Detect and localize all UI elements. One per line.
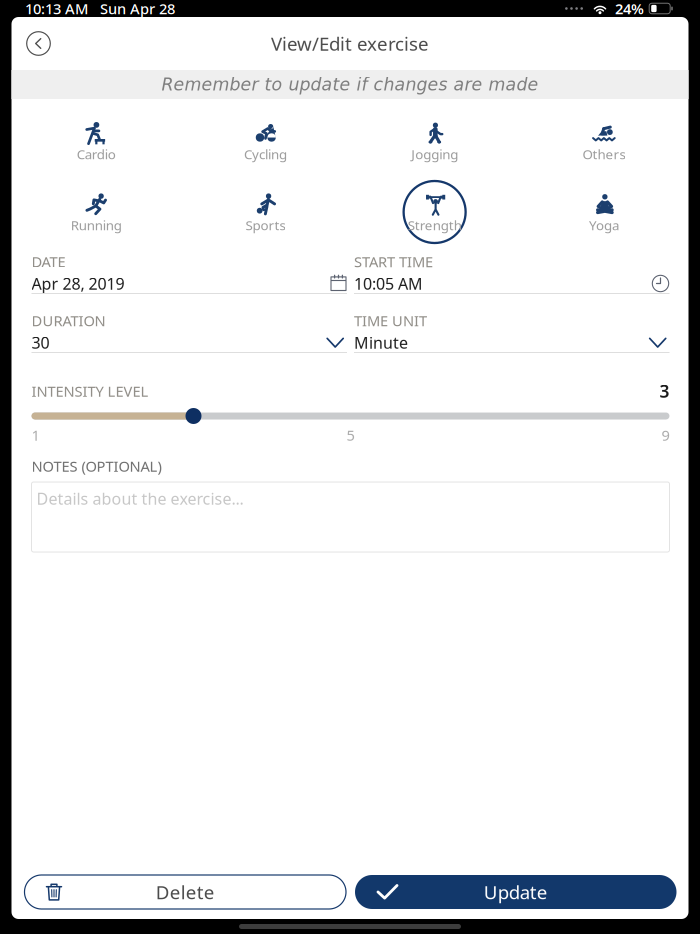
staticText: Strength xyxy=(408,216,462,234)
button[interactable]: START TIME xyxy=(354,254,669,294)
staticText: Yoga xyxy=(589,216,619,234)
staticText: Details about the exercise... xyxy=(36,488,243,509)
button[interactable]: Back xyxy=(17,22,59,64)
staticText: TIME UNIT xyxy=(354,311,427,330)
staticText: 10:05 AM xyxy=(354,273,423,294)
button[interactable]: Delete xyxy=(24,875,346,909)
staticText: Running xyxy=(71,216,122,234)
staticText: Remember to update if changes are made xyxy=(161,74,538,95)
staticText: START TIME xyxy=(354,252,433,271)
staticText: Sports xyxy=(245,216,285,234)
button[interactable]: Update xyxy=(355,875,676,909)
staticText: Cardio xyxy=(77,145,116,163)
staticText: Others xyxy=(582,145,625,163)
button[interactable]: Running xyxy=(11,181,181,243)
staticText: 30 xyxy=(31,332,49,353)
staticText: INTENSITY LEVEL xyxy=(31,381,148,401)
staticText: NOTES (OPTIONAL) xyxy=(31,456,161,476)
button[interactable]: Details about the exercise... xyxy=(31,482,669,552)
button[interactable]: Strength xyxy=(350,181,519,243)
button[interactable]: Cardio xyxy=(11,110,181,172)
staticText: 5 xyxy=(346,425,354,445)
staticText: 10:13 AM xyxy=(25,0,88,18)
button[interactable]: TIME UNIT xyxy=(354,313,669,353)
staticText: DATE xyxy=(31,252,65,271)
staticText: Jogging xyxy=(411,145,458,163)
button[interactable]: Cycling xyxy=(181,110,350,172)
staticText: 3 xyxy=(659,379,669,402)
button[interactable]: Others xyxy=(519,110,688,172)
staticText: 9 xyxy=(661,425,669,445)
button[interactable]: Jogging xyxy=(350,110,519,172)
staticText: Cycling xyxy=(244,145,287,163)
staticText: DURATION xyxy=(31,311,105,330)
button[interactable]: DATE xyxy=(31,254,347,294)
staticText: 24% xyxy=(615,0,644,18)
button[interactable]: Sports xyxy=(181,181,350,243)
staticText: Apr 28, 2019 xyxy=(31,273,124,294)
staticText: 1 xyxy=(31,425,39,445)
button[interactable]: DURATION xyxy=(31,313,347,353)
staticText: Update xyxy=(484,880,548,904)
staticText: View/Edit exercise xyxy=(271,31,429,56)
staticText: Delete xyxy=(156,880,215,904)
button[interactable]: Yoga xyxy=(519,181,688,243)
staticText: Sun Apr 28 xyxy=(88,0,175,18)
staticText: Minute xyxy=(354,332,408,353)
